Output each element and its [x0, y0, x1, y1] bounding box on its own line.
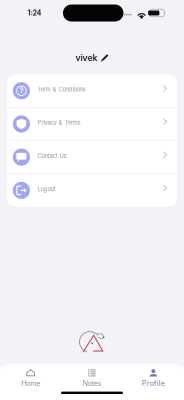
- staticText: Term & Conditions: [37, 86, 85, 93]
- staticText: ?: [19, 87, 23, 95]
- button[interactable]: Logout: [7, 174, 177, 207]
- button[interactable]: vivek: [69, 52, 115, 64]
- button[interactable]: Privacy & Terms: [7, 108, 177, 140]
- button[interactable]: Profile: [123, 364, 184, 393]
- staticText: Contact Us: [37, 152, 66, 159]
- button[interactable]: Contact Us: [7, 141, 177, 173]
- button[interactable]: ?: [7, 74, 177, 107]
- staticText: vivek: [75, 53, 97, 63]
- staticText: Logout: [37, 186, 55, 192]
- staticText: Profile: [142, 379, 165, 388]
- staticText: Home: [21, 379, 40, 388]
- button[interactable]: Home: [0, 364, 61, 393]
- staticText: 1:24: [27, 8, 41, 17]
- staticText: Privacy & Terms: [37, 119, 80, 126]
- staticText: Notes: [82, 379, 101, 388]
- button[interactable]: Notes: [61, 364, 123, 393]
